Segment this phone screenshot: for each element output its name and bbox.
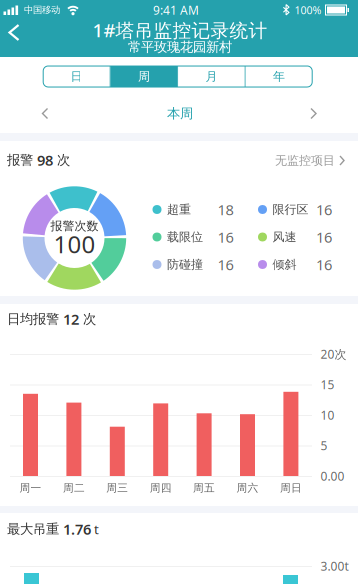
staticText: 100% bbox=[294, 3, 321, 17]
staticText: 1#塔吊监控记录统计 bbox=[92, 18, 267, 42]
staticText: 周三 bbox=[106, 481, 128, 494]
staticText: 周日 bbox=[280, 481, 302, 494]
staticText: 12 bbox=[63, 309, 79, 329]
staticText: 5 bbox=[320, 437, 327, 453]
staticText: 倾斜 bbox=[272, 257, 296, 272]
staticText: 报警次数 bbox=[50, 219, 98, 233]
staticText: 最大吊重 bbox=[7, 521, 63, 537]
staticText: 载限位 bbox=[167, 230, 203, 244]
staticText: t bbox=[91, 520, 99, 538]
staticText: 年 bbox=[273, 69, 285, 84]
staticText: 限行区 bbox=[272, 202, 308, 217]
staticText: 18 bbox=[217, 200, 233, 219]
staticText: 16 bbox=[316, 200, 332, 219]
staticText: 1.76 bbox=[63, 519, 91, 539]
staticText: 日均报警 bbox=[7, 311, 63, 327]
button[interactable]: 无监控项目 bbox=[275, 150, 345, 170]
staticText: 超重 bbox=[167, 202, 191, 217]
staticText: 3.00t bbox=[320, 558, 348, 574]
staticText: 次 bbox=[53, 152, 70, 168]
staticText: 常平玫瑰花园新村 bbox=[128, 39, 232, 55]
staticText: 防碰撞 bbox=[167, 257, 203, 272]
staticText: 15 bbox=[320, 376, 334, 392]
staticText: 9:41 AM bbox=[153, 2, 199, 18]
staticText: 中国移动 bbox=[24, 4, 60, 16]
staticText: 100 bbox=[53, 228, 95, 260]
staticText: 无监控项目 bbox=[275, 153, 335, 168]
staticText: 次 bbox=[79, 311, 96, 327]
button[interactable]: 日 bbox=[43, 66, 110, 87]
staticText: 16 bbox=[217, 227, 233, 247]
staticText: 16 bbox=[316, 227, 332, 247]
staticText: 周四 bbox=[150, 481, 172, 494]
staticText: 16 bbox=[217, 255, 233, 274]
button[interactable]: 月 bbox=[178, 66, 245, 87]
staticText: 周六 bbox=[236, 481, 258, 494]
button[interactable]: Previous week bbox=[33, 99, 56, 127]
staticText: 20次 bbox=[320, 346, 346, 362]
button[interactable]: Next week bbox=[302, 99, 325, 127]
staticText: 日 bbox=[70, 69, 82, 84]
button[interactable]: 年 bbox=[246, 66, 312, 87]
staticText: 98 bbox=[37, 150, 53, 170]
staticText: 周 bbox=[138, 69, 150, 84]
staticText: 0.00 bbox=[320, 468, 344, 484]
staticText: 16 bbox=[316, 255, 332, 274]
staticText: 月 bbox=[205, 69, 217, 84]
staticText: 10 bbox=[320, 407, 334, 423]
staticText: 报警 bbox=[7, 152, 37, 168]
button[interactable]: 周 bbox=[111, 66, 177, 87]
staticText: 周五 bbox=[193, 481, 215, 494]
staticText: 周二 bbox=[63, 481, 85, 494]
staticText: 本周 bbox=[167, 105, 193, 122]
staticText: 风速 bbox=[272, 230, 296, 244]
staticText: 周一 bbox=[19, 481, 41, 494]
button[interactable]: Back bbox=[0, 16, 27, 49]
